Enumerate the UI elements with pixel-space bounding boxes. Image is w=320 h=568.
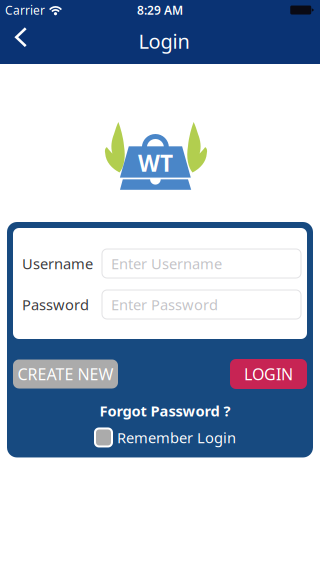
staticText: Password [22,295,89,314]
button[interactable]: Remember Login [94,427,236,447]
staticText: Remember Login [117,428,236,447]
button[interactable]: Enter Username [102,249,301,278]
staticText: LOGIN [244,363,293,385]
staticText: Username [22,254,93,273]
staticText: WT [138,148,173,178]
staticText: Login [138,28,189,54]
staticText: Enter Username [111,254,222,273]
button[interactable]: Enter Password [102,290,301,319]
staticText: Enter Password [111,295,218,314]
staticText: CREATE NEW [17,363,113,385]
button[interactable]: Forgot Password ? [99,389,230,427]
staticText: Forgot Password ? [99,401,230,420]
button[interactable]: Back [0,20,43,64]
button[interactable]: LOGIN [230,359,307,389]
staticText: 8:29 AM [137,2,183,18]
staticText: Carrier [5,2,45,18]
button[interactable]: CREATE NEW [13,359,118,388]
